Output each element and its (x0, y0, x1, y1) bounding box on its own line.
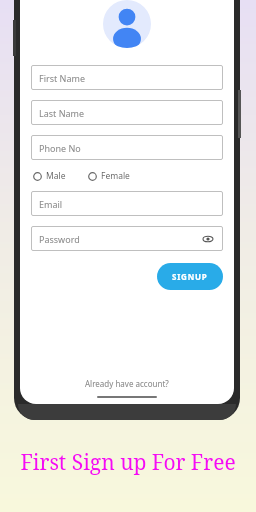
staticText: Email (39, 198, 63, 210)
staticText: Female (101, 170, 130, 182)
staticText: Phone No (39, 142, 81, 154)
button[interactable]: Last Name (31, 100, 223, 125)
button[interactable]: Email (31, 191, 223, 216)
button[interactable]: SIGNUP (157, 263, 223, 290)
button[interactable]: Male (33, 168, 66, 184)
staticText: Last Name (39, 107, 85, 119)
button[interactable]: Toggle password visibility (201, 232, 215, 246)
button[interactable]: Password (31, 226, 223, 251)
button[interactable]: Already have account? (31, 378, 223, 389)
staticText: SIGNUP (172, 271, 208, 282)
button[interactable]: Profile photo (103, 0, 151, 48)
staticText: Male (46, 170, 66, 182)
staticText: Password (39, 233, 80, 245)
staticText: Already have account? (85, 378, 169, 389)
staticText: First Sign up For Free (20, 448, 236, 477)
button[interactable]: First Name (31, 65, 223, 90)
button[interactable]: Phone No (31, 135, 223, 160)
staticText: First Name (39, 72, 85, 84)
button[interactable]: Female (88, 168, 130, 184)
